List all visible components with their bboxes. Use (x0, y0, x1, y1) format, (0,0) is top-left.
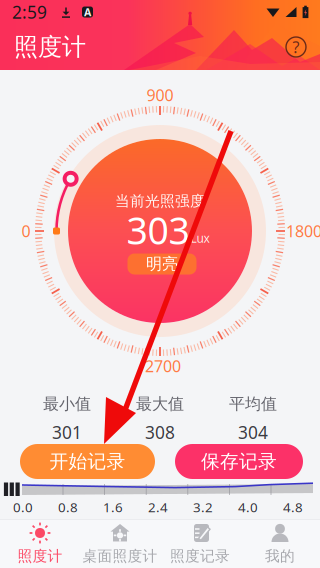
button[interactable]: 帮助 (286, 37, 306, 57)
staticText: 1.6 (103, 498, 123, 516)
staticText: 303 (126, 205, 189, 255)
staticText: 2700 (145, 355, 181, 377)
staticText: ? (292, 36, 299, 58)
staticText: 最大值 (136, 394, 184, 414)
staticText: 2.4 (148, 498, 168, 516)
button[interactable]: 桌面照度计 (80, 519, 160, 568)
staticText: 平均值 (229, 394, 277, 414)
staticText: 900 (146, 84, 173, 106)
staticText: 照度记录 (170, 547, 230, 565)
staticText: 当前光照强度 (115, 192, 205, 210)
staticText: 0 (21, 220, 30, 242)
staticText: 0.0 (13, 498, 33, 516)
button[interactable]: 我的 (240, 519, 320, 568)
staticText: A (84, 5, 91, 19)
staticText: 4.0 (238, 498, 258, 516)
staticText: Lux (190, 230, 209, 246)
staticText: 2:59 (12, 0, 47, 23)
staticText: 1800 (286, 220, 320, 242)
staticText: 我的 (265, 547, 295, 565)
staticText: 0.8 (58, 498, 78, 516)
staticText: 4.8 (283, 498, 303, 516)
button[interactable]: 保存记录 (175, 444, 303, 479)
staticText: 明亮 (146, 254, 178, 274)
staticText: 308 (145, 421, 175, 444)
button[interactable]: 照度记录 (160, 519, 240, 568)
button[interactable]: 照度计 (0, 519, 80, 568)
staticText: 保存记录 (201, 450, 277, 473)
staticText: 照度计 (17, 547, 62, 565)
staticText: 3.2 (193, 498, 213, 516)
staticText: 304 (238, 421, 268, 444)
button[interactable]: 开始记录 (20, 444, 155, 479)
staticText: 照度计 (14, 32, 86, 62)
staticText: 最小值 (43, 394, 91, 414)
staticText: 桌面照度计 (82, 547, 157, 565)
staticText: 301 (52, 421, 82, 444)
staticText: 开始记录 (49, 450, 125, 473)
